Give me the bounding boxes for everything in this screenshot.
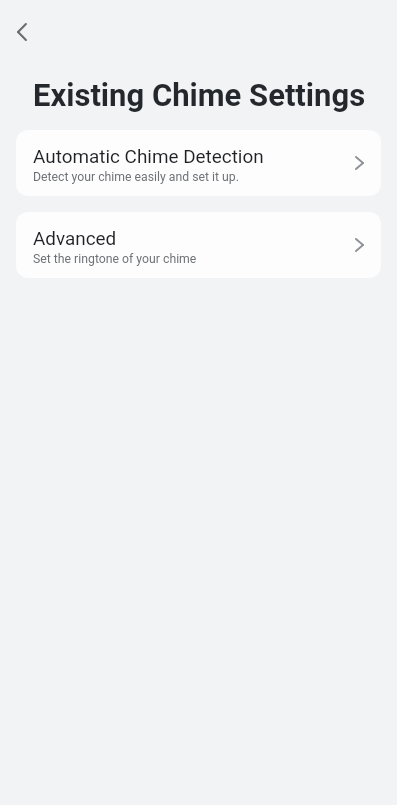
staticText: Set the ringtone of your chime bbox=[33, 252, 197, 266]
button[interactable]: Advanced bbox=[344, 230, 374, 260]
button[interactable]: Automatic Chime Detection bbox=[16, 130, 381, 196]
staticText: Existing Chime Settings bbox=[33, 77, 366, 113]
staticText: Advanced bbox=[33, 227, 117, 249]
button[interactable]: Back bbox=[0, 10, 44, 54]
button[interactable]: Automatic Chime Detection bbox=[344, 148, 374, 178]
staticText: Automatic Chime Detection bbox=[33, 145, 264, 167]
staticText: Detect your chime easily and set it up. bbox=[33, 170, 239, 184]
button[interactable]: Advanced bbox=[16, 212, 381, 278]
